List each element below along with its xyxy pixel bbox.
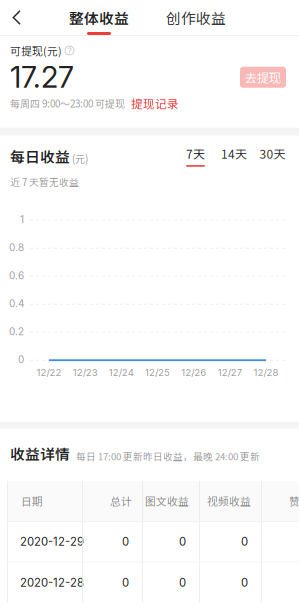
staticText: (元) [70, 151, 88, 166]
staticText: 赞赏 [289, 493, 299, 509]
staticText: 0.2 [9, 326, 24, 338]
button[interactable]: Back [0, 0, 34, 34]
staticText: 7天 [186, 145, 205, 162]
staticText: 2020-12-29 [20, 535, 84, 549]
staticText: 17.27 [10, 59, 74, 95]
staticText: 整体收益 [69, 7, 129, 28]
staticText: 12/26 [181, 367, 206, 378]
staticText: 12/24 [109, 367, 134, 378]
staticText: 创作收益 [166, 7, 226, 28]
staticText: 12/27 [218, 367, 242, 378]
button[interactable]: 去提现 [240, 67, 286, 88]
button[interactable]: 整体收益 [67, 0, 131, 35]
button[interactable]: 提现记录 [131, 95, 179, 112]
staticText: 可提现(元) [10, 43, 62, 58]
staticText: 0.8 [9, 242, 24, 254]
staticText: 0.6 [9, 270, 24, 282]
staticText: ? [67, 46, 71, 55]
staticText: 0.4 [9, 298, 24, 310]
staticText: 0 [18, 354, 24, 366]
staticText: 日期 [21, 493, 43, 509]
staticText: 0 [241, 576, 248, 589]
staticText: 2020-12-28 [20, 576, 84, 589]
staticText: 12/28 [253, 367, 278, 378]
staticText: 30天 [259, 145, 285, 162]
staticText: 14天 [221, 145, 247, 162]
button[interactable]: 7天 [182, 145, 208, 167]
staticText: 12/23 [73, 367, 98, 378]
staticText: 0 [241, 535, 248, 549]
staticText: 0 [179, 535, 186, 549]
staticText: 提现记录 [131, 95, 179, 112]
staticText: 总计 [110, 493, 132, 509]
staticText: 每日收益 [10, 145, 70, 167]
staticText: 收益详情 [10, 443, 70, 464]
staticText: 去提现 [245, 69, 281, 86]
staticText: 0 [179, 576, 186, 589]
button[interactable]: 30天 [259, 145, 285, 167]
staticText: 12/25 [145, 367, 170, 378]
staticText: 0 [122, 576, 129, 589]
staticText: 12/22 [37, 367, 62, 378]
button[interactable]: 14天 [221, 145, 247, 167]
staticText: 近 7 天暂无收益 [10, 175, 79, 189]
staticText: 1 [20, 214, 24, 226]
staticText: 图文收益 [145, 493, 189, 509]
staticText: 视频收益 [207, 493, 251, 509]
staticText: 每日 17:00 更新昨日收益，最晚 24:00 更新 [76, 449, 260, 463]
staticText: 0 [122, 535, 129, 549]
button[interactable]: 创作收益 [164, 0, 228, 35]
staticText: 每周四 9:00～23:00 可提现 [10, 96, 125, 110]
